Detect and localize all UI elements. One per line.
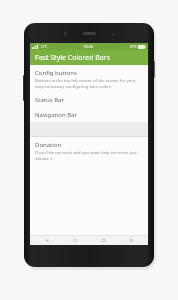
- button[interactable]: Navigation Bar: [30, 107, 148, 122]
- staticText: Config buttons: [35, 69, 77, 77]
- button[interactable]: Menu: [120, 235, 142, 245]
- staticText: Buttons in the top left corner of the sc…: [35, 78, 143, 89]
- button[interactable]: Donation: [30, 137, 148, 164]
- staticText: 87%: [130, 44, 137, 49]
- staticText: If you like my work and you want help me…: [35, 150, 143, 161]
- button[interactable]: Status Bar: [30, 92, 148, 107]
- staticText: Donation: [35, 141, 62, 149]
- button[interactable]: Recents: [92, 235, 114, 245]
- button[interactable]: Back: [36, 235, 58, 245]
- button[interactable]: Home: [64, 235, 86, 245]
- button[interactable]: Fast Style Colored Bars: [30, 50, 148, 65]
- staticText: Fast Style Colored Bars: [35, 53, 111, 63]
- staticText: 10:30: [83, 44, 94, 49]
- staticText: Navigation Bar: [35, 111, 77, 119]
- button[interactable]: Config buttons: [30, 65, 148, 92]
- staticText: Status Bar: [35, 96, 64, 104]
- staticText: LTE: [41, 44, 47, 49]
